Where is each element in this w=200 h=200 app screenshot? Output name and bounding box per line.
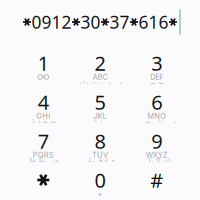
staticText: ج چ [150,74,164,93]
staticText: 616 [138,10,168,33]
staticText: 0 [94,167,105,193]
button[interactable]: 6 MNO [128,84,185,123]
button[interactable]: 1 voicemail [15,45,72,84]
staticText: DEF [150,72,163,81]
staticText: 9 [151,128,162,154]
button[interactable]: 8 TUV [72,123,128,162]
button[interactable]: 0 plus [72,162,128,200]
staticText: JKL [93,111,106,120]
staticText: ض ط ظ [28,152,58,171]
button[interactable]: 3 DEF [128,45,185,84]
staticText: 6 [151,89,162,115]
button[interactable]: 9 WXYZ [128,123,185,162]
staticText: ABC [92,72,107,81]
staticText: 8 [94,128,105,154]
staticText: 4 [38,89,49,115]
staticText: MNO [147,111,166,120]
staticText: 30 [80,10,100,33]
staticText: 0912 [31,10,71,33]
button[interactable]: 4 GHI [15,84,72,123]
staticText: WXYZ [146,150,168,159]
button[interactable]: number sign [128,162,185,200]
staticText: ع غ ف ق [84,152,116,171]
staticText: ر ز ژ [93,113,106,132]
button[interactable]: 5 JKL [72,84,128,123]
staticText: PQRS [33,150,54,159]
staticText: TUV [92,150,108,159]
staticText: 7 [38,128,49,154]
staticText: + [97,189,102,198]
staticText: ب پ ت ث [79,74,121,93]
staticText: # [150,167,163,193]
staticText: 2 [94,50,105,76]
button[interactable]: star [15,162,72,200]
staticText: 3 [151,50,162,76]
staticText: 1 [38,50,49,76]
staticText: 5 [94,89,105,115]
button[interactable]: 7 PQRS [15,123,72,162]
staticText: GHI [36,111,50,120]
staticText: ح خ د ذ [30,113,56,132]
button[interactable]: 2 ABC [72,45,128,84]
staticText: 37 [109,10,129,33]
staticText: ك گ ل [144,152,170,171]
staticText: س ش ص [138,113,176,132]
